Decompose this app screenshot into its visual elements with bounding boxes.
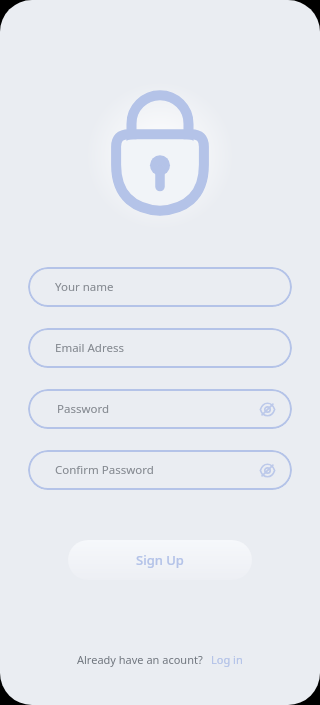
staticText: Your name bbox=[55, 279, 114, 295]
button[interactable]: Toggle password visibility bbox=[256, 459, 278, 481]
staticText: Email Adress bbox=[55, 340, 124, 356]
button[interactable]: Confirm Password bbox=[28, 450, 292, 490]
button[interactable]: Sign Up bbox=[68, 540, 252, 580]
button[interactable]: Toggle password visibility bbox=[256, 398, 278, 420]
staticText: Already have an acount? bbox=[77, 652, 203, 667]
button[interactable]: Email Adress bbox=[28, 328, 292, 368]
staticText: Password bbox=[57, 401, 110, 417]
staticText: Log in bbox=[211, 652, 243, 667]
button[interactable]: Log in bbox=[211, 652, 243, 667]
button[interactable]: Password bbox=[28, 389, 292, 429]
staticText: Sign Up bbox=[136, 551, 184, 569]
button[interactable]: Your name bbox=[28, 267, 292, 307]
staticText: Confirm Password bbox=[55, 462, 154, 478]
